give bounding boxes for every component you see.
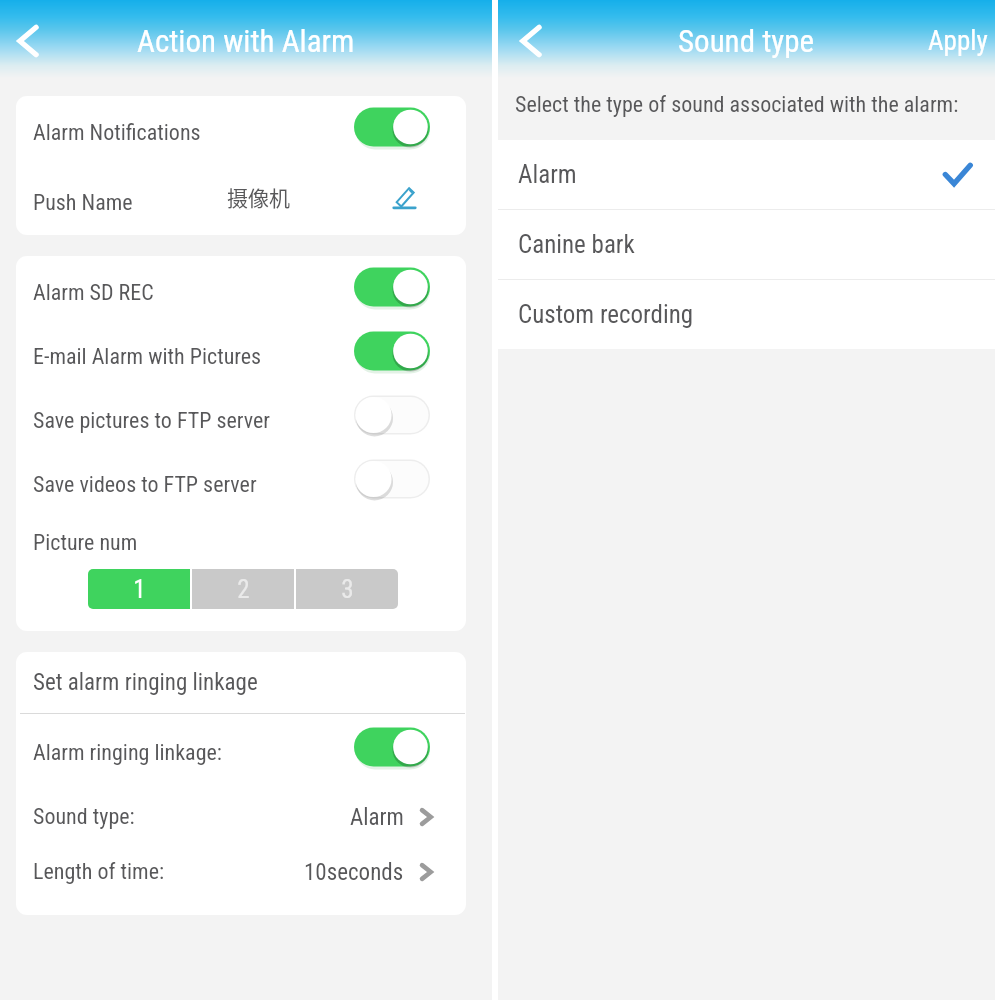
button[interactable]: Toggle on <box>354 726 430 768</box>
button[interactable]: Length of time: <box>16 842 466 902</box>
button[interactable]: Open <box>417 808 435 826</box>
button[interactable]: Back <box>2 15 54 67</box>
staticText: Set alarm ringing linkage <box>33 669 258 696</box>
button[interactable]: Toggle on <box>354 266 430 308</box>
staticText: Alarm ringing linkage: <box>33 740 222 766</box>
button[interactable]: Edit <box>393 186 416 209</box>
staticText: Sound type: <box>33 804 135 830</box>
staticText: Save pictures to FTP server <box>33 408 270 434</box>
staticText: 10seconds <box>304 859 404 886</box>
staticText: 1 <box>133 575 146 604</box>
staticText: Apply <box>928 25 988 57</box>
button[interactable]: Push Name <box>16 170 466 235</box>
staticText: Alarm SD REC <box>33 280 154 306</box>
button[interactable]: 2 <box>192 569 294 609</box>
button[interactable]: Save videos to FTP server <box>16 453 466 517</box>
staticText: Canine bark <box>518 230 635 259</box>
staticText: 2 <box>237 575 250 604</box>
staticText: Custom recording <box>518 300 694 329</box>
staticText: 3 <box>341 575 354 604</box>
button[interactable]: 3 <box>296 569 398 609</box>
button[interactable]: Sound type: <box>16 792 466 842</box>
button[interactable]: Toggle on <box>354 330 430 372</box>
staticText: Alarm <box>350 804 404 831</box>
button[interactable]: Canine bark <box>498 210 995 279</box>
button[interactable]: Alarm SD REC <box>16 261 466 325</box>
button[interactable]: Toggle off <box>354 394 430 436</box>
staticText: E-mail Alarm with Pictures <box>33 344 262 370</box>
button[interactable]: Custom recording <box>498 280 995 349</box>
staticText: Action with Alarm <box>137 23 355 59</box>
staticText: Select the type of sound associated with… <box>515 92 959 118</box>
button[interactable]: Apply <box>928 25 995 57</box>
staticText: Push Name <box>33 190 133 216</box>
button[interactable]: Alarm <box>498 140 995 209</box>
staticText: Save videos to FTP server <box>33 472 257 498</box>
button[interactable]: Set alarm ringing linkage <box>16 652 466 713</box>
button[interactable]: Alarm ringing linkage: <box>16 714 466 792</box>
button[interactable]: Back <box>505 15 557 67</box>
staticText: Sound type <box>678 23 815 59</box>
button[interactable]: Toggle on <box>354 106 430 148</box>
staticText: 摄像机 <box>227 182 290 212</box>
staticText: Alarm <box>518 160 577 189</box>
button[interactable]: Open <box>417 863 435 881</box>
staticText: Picture num <box>33 530 138 556</box>
button[interactable]: Alarm Notifications <box>16 96 466 170</box>
button[interactable]: E-mail Alarm with Pictures <box>16 325 466 389</box>
button[interactable]: 1 <box>88 569 190 609</box>
staticText: Alarm Notifications <box>33 120 201 146</box>
button[interactable]: Toggle off <box>354 458 430 500</box>
staticText: Length of time: <box>33 859 165 885</box>
button[interactable]: Save pictures to FTP server <box>16 389 466 453</box>
